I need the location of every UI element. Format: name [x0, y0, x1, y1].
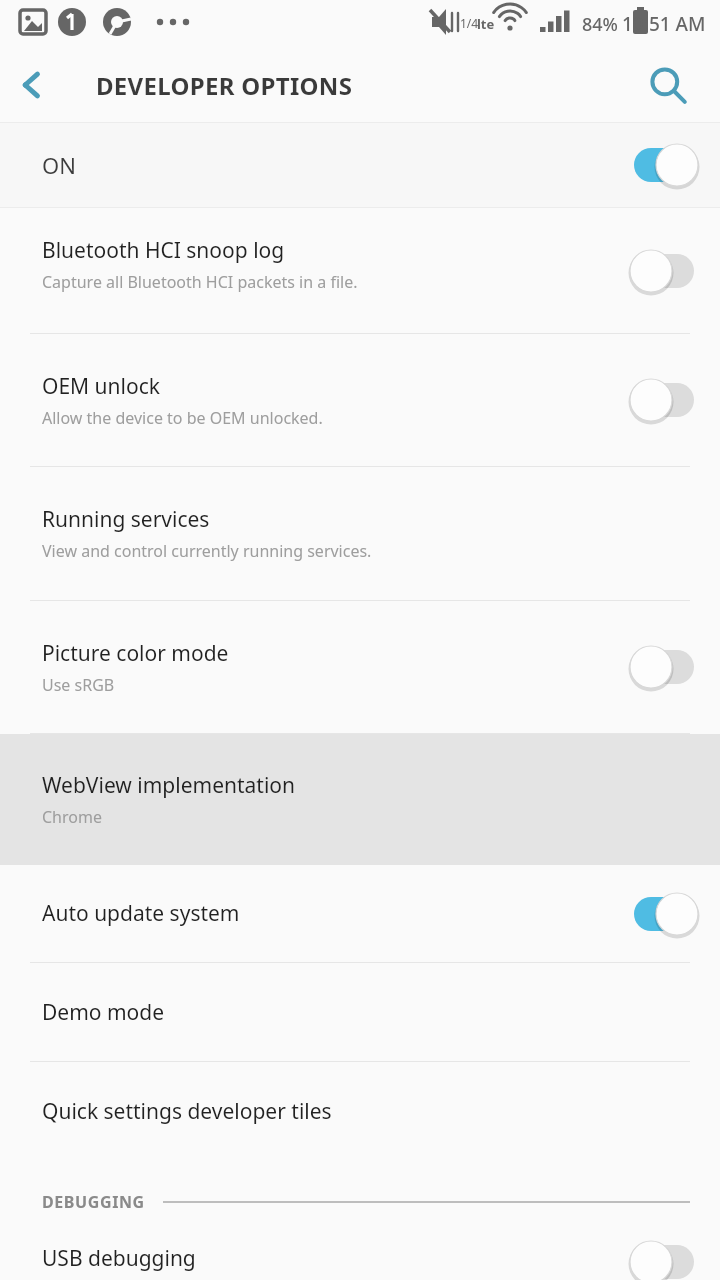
staticText: OEM unlock — [42, 372, 160, 401]
button[interactable]: Running services — [0, 467, 720, 600]
staticText: Running services — [42, 505, 210, 534]
staticText: Use sRGB — [42, 674, 115, 696]
button[interactable]: Auto update system — [0, 865, 720, 962]
staticText: 84% — [582, 12, 618, 37]
button[interactable]: Search — [640, 57, 696, 113]
staticText: Picture color mode — [42, 639, 229, 668]
button[interactable]: Picture color mode — [0, 601, 720, 733]
button[interactable]: Back — [0, 53, 64, 117]
staticText: Allow the device to be OEM unlocked. — [42, 407, 323, 429]
button[interactable]: Demo mode — [0, 963, 720, 1061]
staticText: ON — [42, 150, 76, 180]
staticText: WebView implementation — [42, 771, 296, 800]
staticText: Capture all Bluetooth HCI packets in a f… — [42, 271, 358, 293]
staticText: DEBUGGING — [42, 1191, 145, 1213]
button[interactable]: Bluetooth HCI snoop log — [0, 208, 720, 333]
staticText: 1/4 — [460, 15, 479, 31]
staticText: USB debugging — [42, 1244, 196, 1273]
button[interactable]: Quick settings developer tiles — [0, 1062, 720, 1160]
staticText: 10:51 AM — [622, 11, 706, 37]
button[interactable]: WebView implementation — [0, 734, 720, 865]
staticText: Bluetooth HCI snoop log — [42, 236, 285, 265]
button[interactable]: USB debugging — [0, 1244, 720, 1280]
staticText: DEVELOPER OPTIONS — [96, 69, 353, 102]
button[interactable]: OEM unlock — [0, 334, 720, 466]
staticText: Chrome — [42, 806, 102, 828]
button[interactable]: ON — [0, 123, 720, 207]
staticText: Quick settings developer tiles — [42, 1097, 332, 1126]
staticText: Demo mode — [42, 998, 165, 1027]
staticText: lte — [477, 15, 495, 33]
staticText: Auto update system — [42, 899, 240, 928]
staticText: View and control currently running servi… — [42, 540, 372, 562]
